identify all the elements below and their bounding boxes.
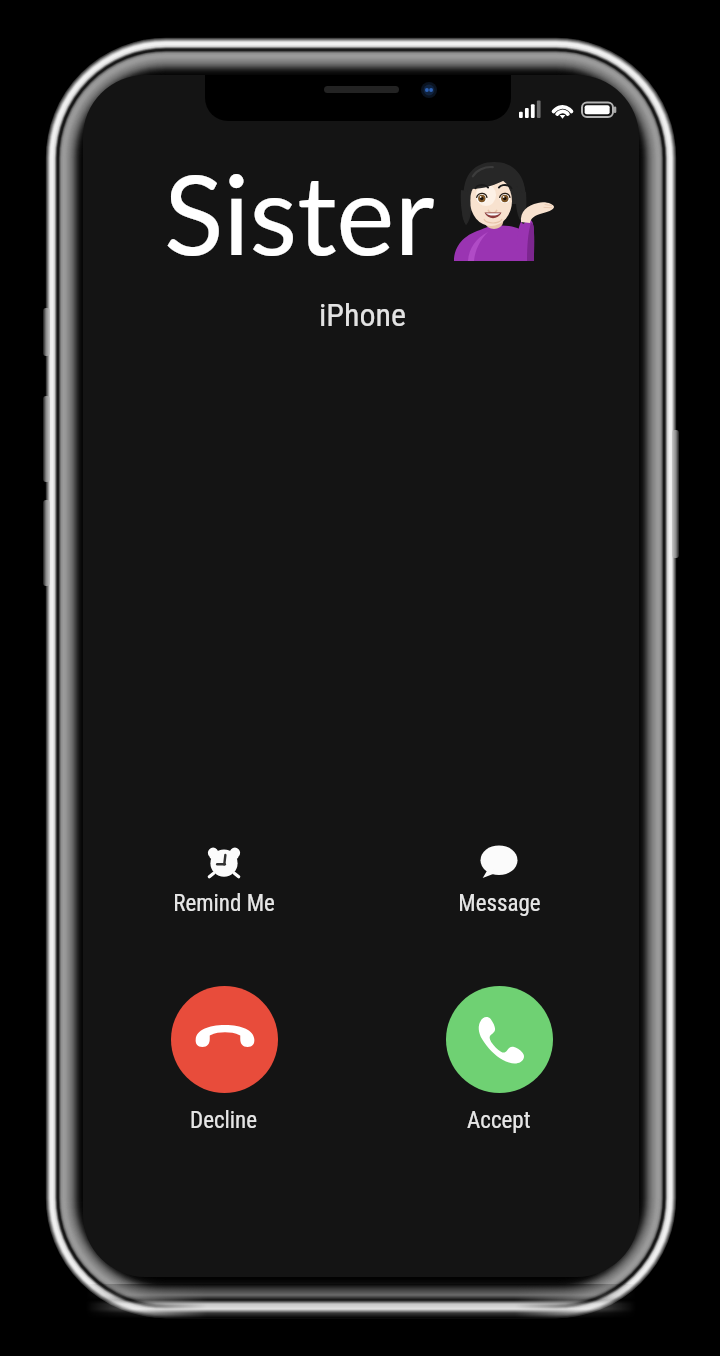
button[interactable]: Decline bbox=[149, 986, 299, 1134]
staticText: iPhone bbox=[319, 296, 407, 334]
button[interactable]: Message bbox=[424, 840, 574, 917]
staticText: Message bbox=[458, 890, 541, 917]
staticText: Sister bbox=[164, 146, 435, 278]
staticText: Remind Me bbox=[173, 890, 275, 917]
button[interactable]: Accept bbox=[424, 986, 574, 1134]
staticText: Decline bbox=[190, 1107, 258, 1134]
staticText: Accept bbox=[467, 1107, 531, 1134]
button[interactable]: Remind Me bbox=[149, 840, 299, 917]
